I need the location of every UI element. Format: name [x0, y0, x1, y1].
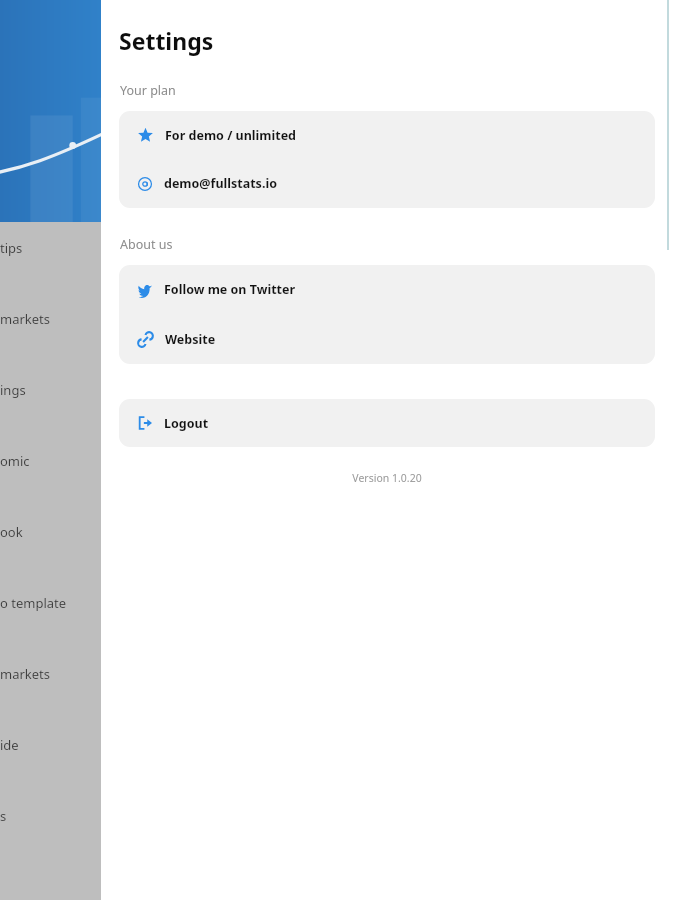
button[interactable]: omic [0, 410, 101, 481]
button[interactable]: ings [0, 339, 101, 410]
staticText: ings [0, 381, 26, 399]
button[interactable]: ide [0, 694, 101, 765]
button[interactable]: s [0, 765, 101, 836]
staticText: Version 1.0.20 [101, 471, 673, 485]
button[interactable]: markets [0, 623, 101, 694]
staticText: Your plan [120, 82, 176, 99]
button[interactable]: tips [0, 222, 101, 268]
staticText: For demo / unlimited [165, 127, 296, 144]
button[interactable]: Logout [119, 399, 655, 447]
button[interactable]: Plan [119, 111, 655, 159]
button[interactable]: Website [119, 314, 655, 364]
staticText: ide [0, 736, 19, 754]
staticText: ook [0, 523, 23, 541]
button[interactable]: markets [0, 268, 101, 339]
staticText: Settings [119, 25, 214, 56]
button[interactable]: ook [0, 481, 101, 552]
button[interactable]: o template [0, 552, 101, 623]
staticText: s [0, 807, 7, 825]
button[interactable]: Twitter [119, 265, 655, 314]
staticText: tips [0, 239, 23, 257]
staticText: Follow me on Twitter [164, 281, 296, 298]
staticText: markets [0, 310, 51, 328]
staticText: o template [0, 594, 67, 612]
button[interactable]: Account email [119, 159, 655, 208]
staticText: omic [0, 452, 30, 470]
staticText: demo@fullstats.io [164, 175, 277, 192]
staticText: Logout [164, 415, 209, 432]
staticText: About us [120, 236, 173, 253]
staticText: Website [165, 331, 216, 348]
staticText: markets [0, 665, 51, 683]
